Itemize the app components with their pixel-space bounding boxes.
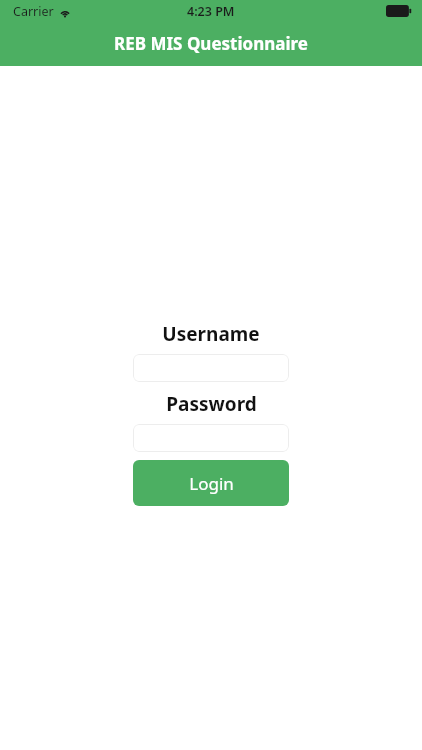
staticText: Carrier <box>13 3 54 20</box>
staticText: REB MIS Questionnaire <box>114 32 308 55</box>
button[interactable]: Text input field <box>133 354 289 382</box>
button[interactable]: Login <box>133 460 289 506</box>
staticText: 4:23 PM <box>187 3 235 20</box>
staticText: Password <box>166 391 257 417</box>
button[interactable]: Text input field <box>133 424 289 452</box>
staticText: Login <box>189 472 234 495</box>
staticText: Username <box>162 321 260 347</box>
